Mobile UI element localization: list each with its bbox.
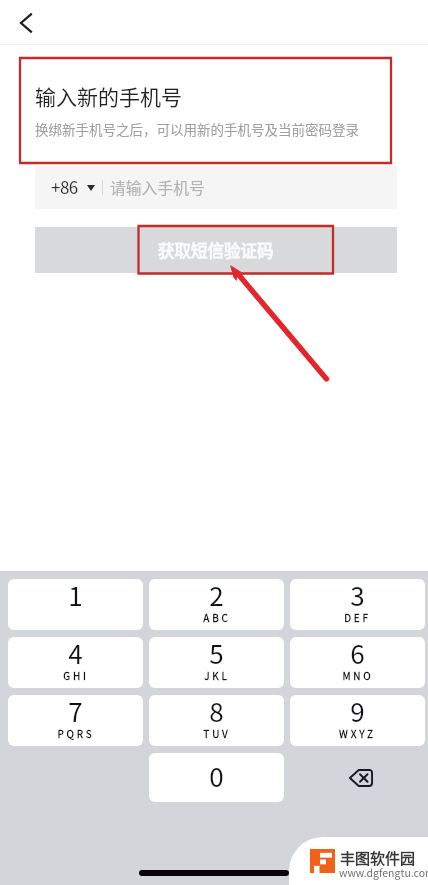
staticText: 丰图软件园 [340,847,416,869]
staticText: MNO [342,668,374,682]
staticText: DEF [344,610,371,624]
staticText: WXYZ [339,726,376,740]
staticText: 换绑新手机号之后，可以用新的手机号及当前密码登录 [35,119,359,139]
staticText: 5 [209,637,224,672]
staticText: 4 [68,637,83,672]
staticText: ABC [203,610,231,624]
button[interactable]: Backspace [290,753,425,802]
staticText: PQRS [57,726,95,740]
button[interactable]: 3 [290,579,425,630]
button[interactable]: 5 [149,637,284,688]
staticText: +86 [51,174,78,199]
button[interactable]: +86 [35,166,397,209]
button[interactable]: 获取短信验证码 [35,227,397,273]
staticText: GHI [63,668,89,682]
staticText: 1 [68,579,83,614]
button[interactable]: 4 [8,637,143,688]
button[interactable]: 0 [149,753,284,802]
staticText: 输入新的手机号 [35,81,182,111]
staticText: TUV [203,726,231,740]
staticText: 请输入手机号 [110,176,205,199]
staticText: 7 [68,695,83,730]
staticText: JKL [204,668,230,682]
staticText: 0 [209,757,224,795]
staticText: 8 [209,695,224,730]
staticText: 2 [209,579,224,614]
button[interactable]: 9 [290,695,425,746]
staticText: 3 [350,579,365,614]
staticText: 获取短信验证码 [158,238,274,262]
button[interactable]: 8 [149,695,284,746]
button[interactable]: 1 [8,579,143,630]
button[interactable]: Back [3,0,51,45]
staticText: www.dgfengtu.com [339,865,428,880]
button[interactable]: 2 [149,579,284,630]
button[interactable]: 6 [290,637,425,688]
button[interactable]: 7 [8,695,143,746]
staticText: 6 [350,637,365,672]
staticText: 9 [350,695,365,730]
